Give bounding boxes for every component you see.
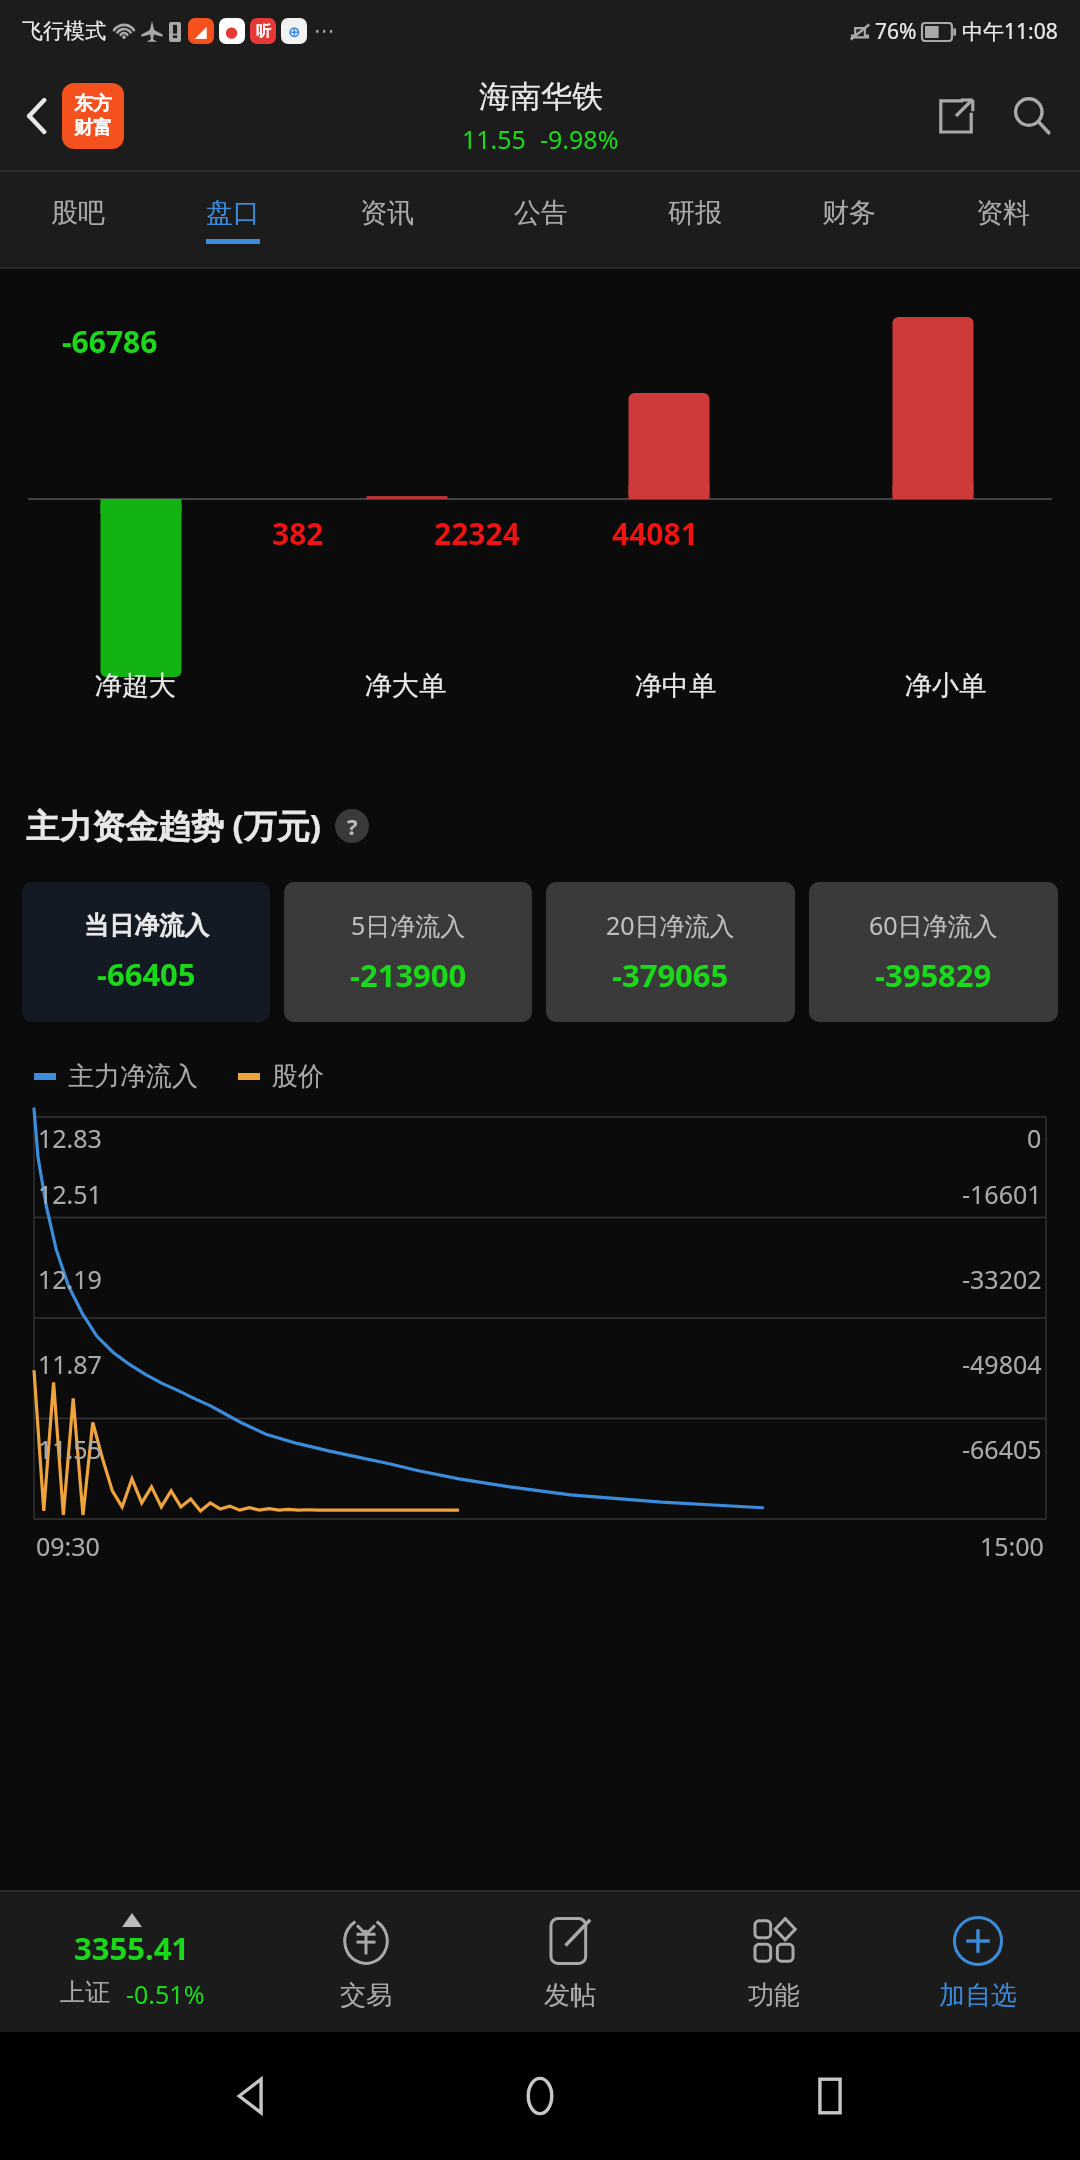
staticText: -379065	[612, 954, 729, 996]
staticText: 发帖	[544, 1979, 596, 2012]
staticText: -66786	[62, 321, 158, 362]
staticText: 交易	[340, 1979, 392, 2012]
staticText: 主力资金趋势 (万元)	[26, 803, 321, 848]
staticText: ●	[225, 23, 239, 40]
staticText: 东方	[74, 92, 112, 116]
staticText: 09:30	[36, 1529, 100, 1563]
staticText: 11.87	[38, 1347, 102, 1381]
button[interactable]: 功能	[672, 1892, 876, 2032]
button[interactable]: 发帖	[468, 1892, 672, 2032]
staticText: 财富	[74, 116, 112, 140]
button[interactable]: 资讯	[310, 172, 464, 267]
staticText: 44081	[612, 513, 698, 554]
button[interactable]: 交易	[264, 1892, 468, 2032]
button[interactable]: 返回	[12, 83, 62, 149]
staticText: 净大单	[365, 669, 446, 703]
staticText: 加自选	[939, 1979, 1017, 2012]
staticText: 中午11:08	[962, 17, 1058, 46]
staticText: 11.55	[462, 122, 526, 156]
button[interactable]: 主页	[501, 2057, 579, 2135]
button[interactable]: 加自选	[876, 1892, 1080, 2032]
button[interactable]: 盘口	[155, 172, 310, 267]
staticText: 净小单	[905, 669, 986, 703]
staticText: 上证	[60, 1977, 110, 2008]
staticText: 盘口	[206, 196, 260, 230]
button[interactable]: 5日净流入	[284, 882, 532, 1022]
staticText: -66405	[962, 1432, 1042, 1466]
staticText: 20日净流入	[606, 908, 735, 942]
staticText: 股价	[272, 1060, 324, 1093]
staticText: 60日净流入	[869, 908, 998, 942]
staticText: -16601	[962, 1177, 1042, 1211]
staticText: -66405	[97, 953, 196, 995]
button[interactable]: 资料	[926, 172, 1080, 267]
button[interactable]: 搜索	[1002, 86, 1062, 146]
button[interactable]: 帮助	[335, 809, 369, 843]
button[interactable]: 60日净流入	[809, 882, 1058, 1022]
button[interactable]: 3355.41	[0, 1892, 264, 2032]
staticText: 主力净流入	[68, 1060, 198, 1093]
staticText: ⋯	[314, 19, 335, 43]
staticText: 15:00	[980, 1529, 1044, 1563]
button[interactable]: 最近任务	[791, 2057, 869, 2135]
staticText: 飞行模式	[22, 18, 106, 44]
staticText: ◢	[195, 23, 207, 40]
staticText: 5日净流入	[351, 908, 466, 942]
staticText: ⊕	[288, 23, 301, 40]
staticText: 12.51	[38, 1177, 102, 1211]
staticText: -395829	[875, 954, 992, 996]
staticText: ?	[347, 811, 358, 841]
staticText: 22324	[434, 513, 520, 554]
staticText: 当日净流入	[84, 910, 209, 941]
staticText: 0	[1027, 1121, 1042, 1155]
staticText: 3355.41	[74, 1927, 190, 1969]
staticText: 资料	[976, 196, 1030, 230]
staticText: 公告	[514, 196, 568, 230]
staticText: -213900	[350, 954, 467, 996]
staticText: 382	[272, 513, 324, 554]
staticText: 研报	[668, 196, 722, 230]
staticText: -0.51%	[126, 1977, 205, 2011]
staticText: 股吧	[51, 196, 105, 230]
staticText: -33202	[962, 1262, 1042, 1296]
staticText: 海南华铁	[479, 77, 603, 116]
button[interactable]: 股吧	[0, 172, 155, 267]
staticText: 资讯	[360, 196, 414, 230]
staticText: 12.83	[38, 1121, 102, 1155]
staticText: 净超大	[95, 669, 176, 703]
staticText: 净中单	[635, 669, 716, 703]
staticText: -49804	[962, 1347, 1042, 1381]
button[interactable]: 当日净流入	[22, 882, 270, 1022]
button[interactable]: 分享	[926, 86, 986, 146]
button[interactable]: 东方财富	[62, 83, 124, 149]
button[interactable]: 公告	[464, 172, 618, 267]
staticText: 76%	[875, 17, 917, 46]
staticText: 功能	[748, 1979, 800, 2012]
staticText: 财务	[822, 196, 876, 230]
button[interactable]: 财务	[772, 172, 926, 267]
staticText: 11.55	[38, 1432, 102, 1466]
staticText: -9.98%	[540, 122, 619, 156]
button[interactable]: 返回	[212, 2057, 290, 2135]
button[interactable]: 20日净流入	[546, 882, 795, 1022]
staticText: 12.19	[38, 1262, 102, 1296]
staticText: 听	[256, 22, 271, 41]
button[interactable]: 研报	[618, 172, 772, 267]
